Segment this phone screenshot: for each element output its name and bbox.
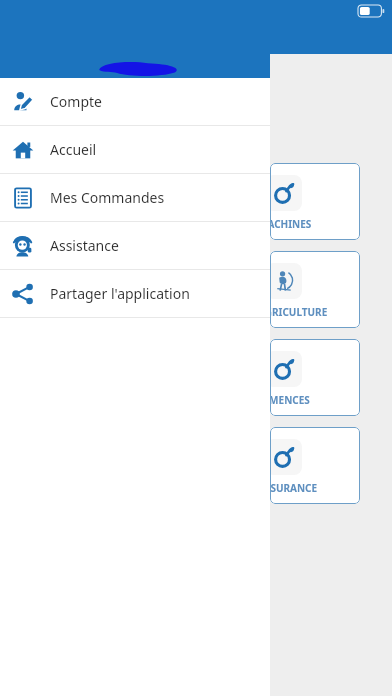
button[interactable]: Mes Commandes bbox=[0, 174, 270, 221]
button[interactable]: AGRICULTURE bbox=[270, 251, 360, 328]
staticText: Partager l'application bbox=[50, 284, 190, 303]
staticText: AGRICULTURE bbox=[270, 305, 328, 319]
button[interactable]: SEMENCES bbox=[270, 339, 360, 416]
staticText: Mes Commandes bbox=[50, 188, 165, 207]
button[interactable]: Partager l'application bbox=[0, 270, 270, 317]
staticText: MACHINES AGRICOLES bbox=[270, 217, 348, 231]
staticText: Accueil bbox=[50, 140, 97, 159]
button[interactable]: Accueil bbox=[0, 126, 270, 173]
staticText: Assistance bbox=[50, 236, 119, 255]
button[interactable]: Assistance bbox=[0, 222, 270, 269]
staticText: ASSURANCE bbox=[270, 481, 318, 495]
button[interactable]: MACHINES AGRICOLES bbox=[270, 163, 360, 240]
button[interactable]: Compte bbox=[0, 78, 270, 125]
staticText: Compte bbox=[50, 92, 102, 111]
button[interactable]: ASSURANCE bbox=[270, 427, 360, 504]
staticText: SEMENCES bbox=[270, 393, 310, 407]
